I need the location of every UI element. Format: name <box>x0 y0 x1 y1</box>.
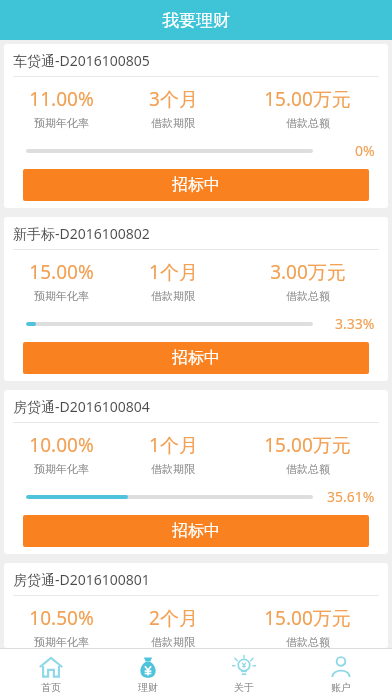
button[interactable]: 招标中 <box>23 515 369 547</box>
staticText: 招标中 <box>172 521 220 541</box>
staticText: 房贷通-D2016100804 <box>13 397 150 416</box>
staticText: 11.00% <box>29 86 94 112</box>
button[interactable]: 招标中 <box>23 342 369 374</box>
staticText: 借款总额 <box>286 462 330 476</box>
staticText: 1个月 <box>149 432 198 458</box>
button[interactable]: 新手标-D2016100802 <box>4 217 388 381</box>
staticText: 新手标-D2016100802 <box>13 224 150 243</box>
staticText: 10.50% <box>29 605 94 631</box>
staticText: 15.00万元 <box>264 605 351 631</box>
staticText: 招标中 <box>172 175 220 195</box>
staticText: 借款总额 <box>286 116 330 130</box>
staticText: 我要理财 <box>162 10 230 31</box>
staticText: 借款期限 <box>151 635 195 648</box>
staticText: 借款期限 <box>151 462 195 476</box>
staticText: 15.00万元 <box>264 432 351 458</box>
button[interactable]: 招标中 <box>23 169 369 201</box>
staticText: 预期年化率 <box>34 116 89 130</box>
staticText: 预期年化率 <box>34 462 89 476</box>
staticText: 借款期限 <box>151 116 195 130</box>
staticText: 3.33% <box>335 314 375 333</box>
staticText: 账户 <box>331 681 351 694</box>
button[interactable]: 车贷通-D2016100805 <box>4 44 388 208</box>
staticText: 35.61% <box>327 487 375 506</box>
staticText: 借款总额 <box>286 289 330 303</box>
staticText: 3个月 <box>149 86 198 112</box>
staticText: 15.00% <box>29 259 94 285</box>
staticText: 借款期限 <box>151 289 195 303</box>
staticText: 理财 <box>138 681 158 694</box>
staticText: 关于 <box>234 681 254 694</box>
button[interactable]: Home <box>6 650 96 694</box>
staticText: 0% <box>355 141 375 160</box>
staticText: 1个月 <box>149 259 198 285</box>
staticText: 15.00万元 <box>264 86 351 112</box>
staticText: 借款总额 <box>286 635 330 648</box>
staticText: 首页 <box>41 681 61 694</box>
staticText: 预期年化率 <box>34 635 89 648</box>
staticText: 3.00万元 <box>270 259 346 285</box>
staticText: 10.00% <box>29 432 94 458</box>
staticText: 预期年化率 <box>34 289 89 303</box>
button[interactable]: 房贷通-D2016100804 <box>4 390 388 554</box>
staticText: 房贷通-D2016100801 <box>13 570 150 589</box>
staticText: 车贷通-D2016100805 <box>13 51 150 70</box>
button[interactable]: 房贷通-D2016100801 <box>4 563 388 648</box>
button[interactable]: About <box>199 650 289 694</box>
staticText: 2个月 <box>149 605 198 631</box>
staticText: 招标中 <box>172 348 220 368</box>
button[interactable]: Finance <box>103 650 193 694</box>
button[interactable]: Account <box>296 650 386 694</box>
